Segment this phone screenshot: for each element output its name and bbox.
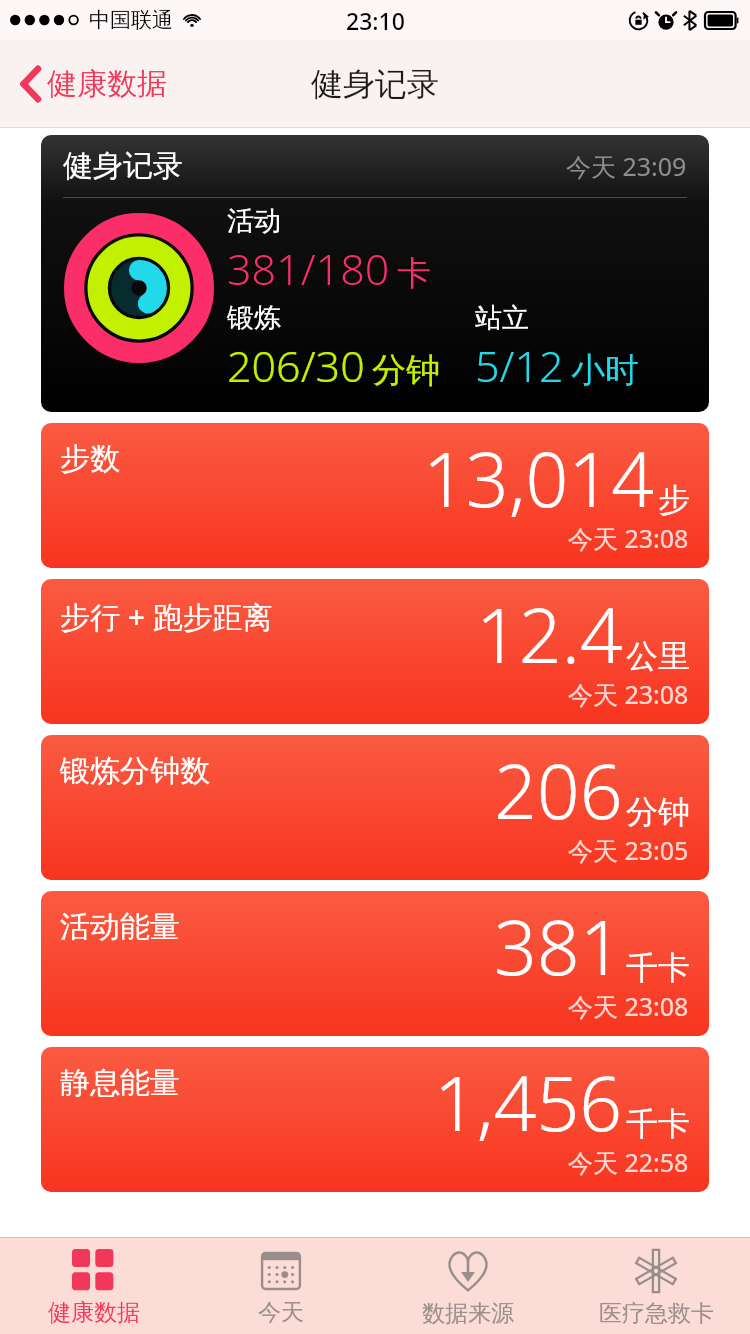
staticText: 健康数据 [48, 1298, 140, 1327]
staticText: 步 [658, 480, 690, 520]
staticText: 数据来源 [422, 1299, 514, 1328]
button[interactable]: 步行 + 跑步距离 [41, 579, 709, 724]
staticText: 步行 + 跑步距离 [60, 596, 273, 637]
staticText: 千卡 [626, 1104, 690, 1144]
button[interactable]: 健康数据 [0, 1238, 187, 1334]
staticText: 活动 [227, 204, 281, 238]
staticText: 今天 23:08 [568, 989, 689, 1023]
button[interactable]: 今天 [187, 1238, 374, 1334]
staticText: 381/180 [227, 239, 390, 298]
staticText: 卡 [397, 252, 431, 295]
staticText: 站立 [475, 301, 529, 335]
staticText: 健身记录 [63, 147, 183, 185]
button[interactable]: 静息能量 [41, 1047, 709, 1192]
staticText: 锻炼 [227, 301, 281, 335]
button[interactable]: 健康数据 [14, 57, 173, 111]
staticText: 活动能量 [60, 908, 180, 946]
staticText: 小时 [571, 349, 639, 392]
staticText: 医疗急救卡 [599, 1299, 714, 1328]
staticText: 静息能量 [60, 1064, 180, 1102]
staticText: 23:10 [346, 5, 405, 36]
button[interactable]: 健身记录 [41, 135, 709, 412]
button[interactable]: 锻炼分钟数 [41, 735, 709, 880]
staticText: 1,456 [434, 1051, 623, 1153]
staticText: 今天 [258, 1298, 304, 1327]
button[interactable]: 医疗急救卡 [562, 1238, 750, 1334]
button[interactable]: 步数 [41, 423, 709, 568]
staticText: 5/12 [475, 336, 564, 395]
staticText: 分钟 [372, 349, 440, 392]
staticText: 今天 23:08 [568, 677, 689, 711]
staticText: 12.4 [476, 583, 623, 685]
staticText: 13,014 [423, 427, 655, 529]
staticText: 今天 23:05 [568, 833, 689, 867]
staticText: 中国联通 [89, 7, 173, 33]
staticText: 今天 23:09 [566, 149, 687, 183]
staticText: 公里 [626, 636, 690, 676]
staticText: 健康数据 [47, 65, 167, 103]
staticText: 今天 22:58 [568, 1145, 689, 1179]
staticText: 206 [494, 739, 623, 841]
staticText: 健身记录 [311, 64, 439, 104]
staticText: 千卡 [626, 948, 690, 988]
button[interactable]: 活动能量 [41, 891, 709, 1036]
staticText: 锻炼分钟数 [60, 752, 210, 790]
staticText: 381 [494, 895, 623, 997]
staticText: 206/30 [227, 336, 365, 395]
staticText: 分钟 [626, 792, 690, 832]
staticText: 步数 [60, 440, 120, 478]
button[interactable]: 数据来源 [374, 1238, 562, 1334]
staticText: 今天 23:08 [568, 521, 689, 555]
